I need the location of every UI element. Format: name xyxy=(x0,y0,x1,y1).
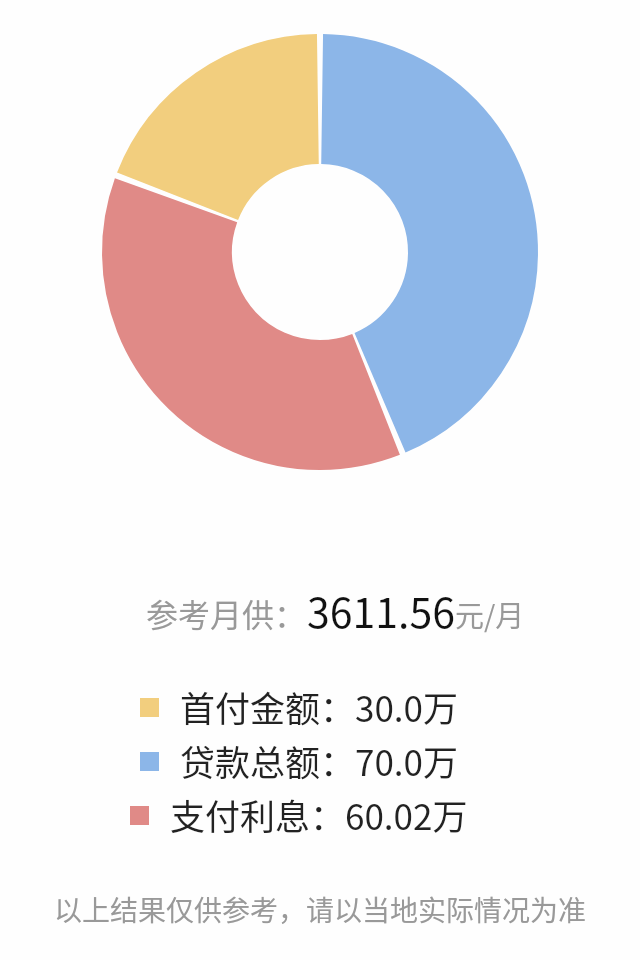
staticText: 支付利息：60.02万 xyxy=(170,789,468,840)
button[interactable]: 贷款总额：70.0万 xyxy=(140,735,459,786)
staticText: 元/月 xyxy=(455,593,525,635)
button[interactable]: 支付利息：60.02万 xyxy=(130,789,468,840)
staticText: 参考月供： xyxy=(146,590,307,636)
staticText: 贷款总额：70.0万 xyxy=(180,735,459,786)
button[interactable]: 首付金额：30.0万 xyxy=(140,681,459,732)
staticText: 3611.56 xyxy=(307,580,455,639)
staticText: 首付金额：30.0万 xyxy=(180,681,459,732)
other: 贷款构成饼图 xyxy=(102,34,538,470)
staticText: 以上结果仅供参考，请以当地实际情况为准 xyxy=(0,889,640,930)
